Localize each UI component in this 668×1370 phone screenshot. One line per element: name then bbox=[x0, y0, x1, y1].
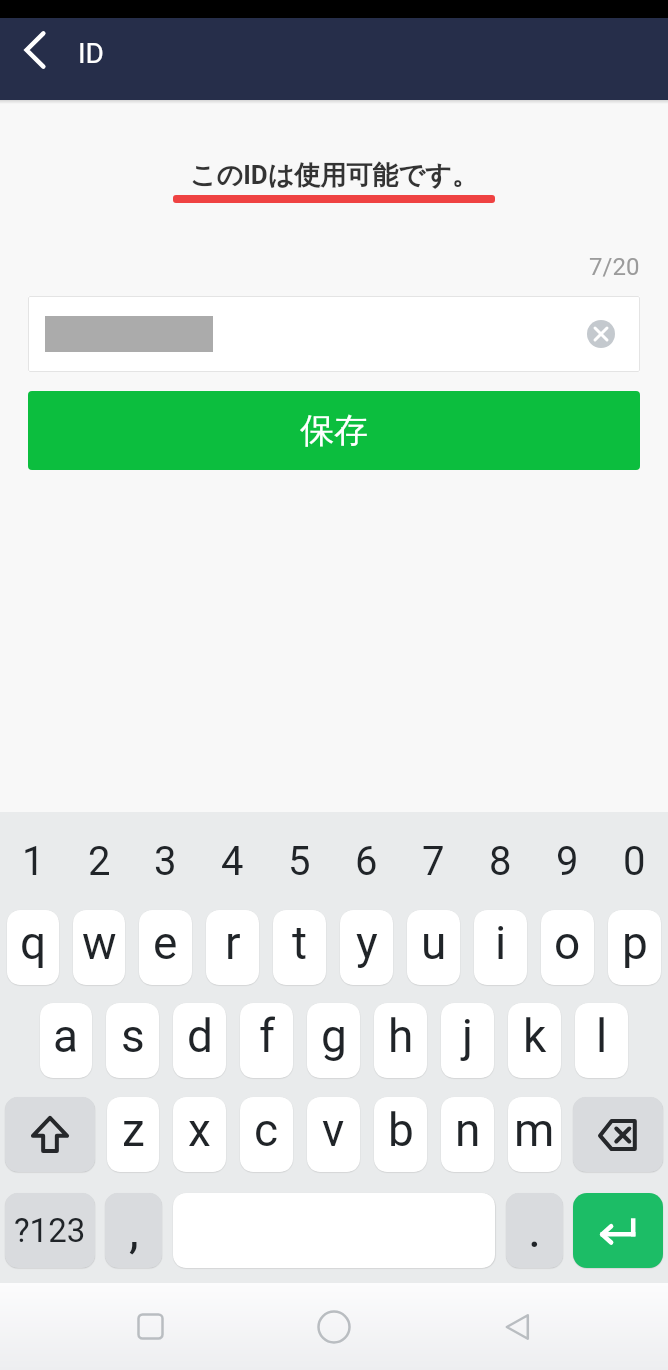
staticText: c bbox=[254, 1103, 279, 1157]
button[interactable]: 9 bbox=[534, 812, 601, 910]
button[interactable]: 0 bbox=[601, 812, 668, 910]
staticText: ID bbox=[78, 37, 104, 70]
staticText: このIDは使用可能です。 bbox=[190, 159, 478, 192]
staticText: j bbox=[462, 1009, 474, 1063]
button[interactable]: k bbox=[508, 1003, 561, 1078]
button[interactable]: 7 bbox=[400, 812, 467, 910]
button[interactable]: q bbox=[7, 910, 59, 985]
staticText: b bbox=[388, 1103, 414, 1157]
button[interactable]: t bbox=[273, 910, 326, 985]
button[interactable]: z bbox=[107, 1097, 159, 1172]
staticText: 5 bbox=[288, 838, 311, 885]
button[interactable]: 5 bbox=[266, 812, 333, 910]
staticText: t bbox=[292, 916, 308, 970]
button[interactable]: f bbox=[240, 1003, 293, 1078]
button[interactable]: l bbox=[575, 1003, 628, 1078]
button[interactable]: ?123 bbox=[5, 1193, 95, 1268]
staticText: 0 bbox=[623, 838, 646, 885]
button[interactable]: d bbox=[173, 1003, 226, 1078]
staticText: w bbox=[82, 916, 117, 970]
staticText: 1 bbox=[22, 838, 45, 885]
staticText: a bbox=[53, 1009, 79, 1063]
button[interactable]: 2 bbox=[66, 812, 132, 910]
button[interactable]: e bbox=[139, 910, 192, 985]
staticText: u bbox=[421, 916, 447, 970]
button[interactable]: a bbox=[40, 1003, 92, 1078]
button[interactable]: b bbox=[374, 1097, 427, 1172]
staticText: s bbox=[121, 1009, 145, 1063]
staticText: , bbox=[129, 1201, 139, 1260]
staticText: 保存 bbox=[300, 409, 368, 452]
staticText: v bbox=[322, 1103, 345, 1157]
button[interactable]: 8 bbox=[467, 812, 534, 910]
button[interactable]: o bbox=[541, 910, 594, 985]
button[interactable] bbox=[5, 1097, 95, 1172]
button[interactable] bbox=[573, 1097, 663, 1172]
button[interactable] bbox=[90, 1283, 210, 1370]
staticText: k bbox=[523, 1009, 547, 1063]
staticText: 7 bbox=[422, 838, 445, 885]
button[interactable]: 3 bbox=[132, 812, 199, 910]
button[interactable]: 保存 bbox=[28, 391, 640, 470]
staticText: l bbox=[596, 1009, 608, 1063]
staticText: y bbox=[356, 916, 378, 970]
button[interactable]: s bbox=[106, 1003, 159, 1078]
staticText: x bbox=[188, 1103, 211, 1157]
staticText: n bbox=[455, 1103, 481, 1157]
staticText: q bbox=[20, 916, 47, 970]
button[interactable]: p bbox=[608, 910, 661, 985]
button[interactable]: 6 bbox=[333, 812, 400, 910]
button[interactable] bbox=[573, 1193, 663, 1268]
staticText: m bbox=[514, 1103, 555, 1157]
staticText: o bbox=[554, 916, 581, 970]
staticText: 3 bbox=[154, 838, 177, 885]
button[interactable]: m bbox=[508, 1097, 561, 1172]
staticText: z bbox=[122, 1103, 145, 1157]
button[interactable]: 4 bbox=[199, 812, 266, 910]
button[interactable]: 1 bbox=[0, 812, 66, 910]
button[interactable]: i bbox=[474, 910, 527, 985]
button[interactable] bbox=[274, 1283, 394, 1370]
button[interactable] bbox=[28, 296, 640, 372]
staticText: i bbox=[495, 916, 507, 970]
staticText: f bbox=[259, 1009, 275, 1063]
button[interactable]: y bbox=[340, 910, 393, 985]
staticText: h bbox=[388, 1009, 414, 1063]
staticText: d bbox=[187, 1009, 213, 1063]
button[interactable]: h bbox=[374, 1003, 427, 1078]
staticText: . bbox=[528, 1201, 542, 1260]
button[interactable]: g bbox=[307, 1003, 360, 1078]
staticText: g bbox=[321, 1009, 347, 1063]
staticText: p bbox=[622, 916, 648, 970]
button[interactable]: u bbox=[407, 910, 460, 985]
button[interactable]: c bbox=[240, 1097, 293, 1172]
staticText: r bbox=[225, 916, 241, 970]
button[interactable]: x bbox=[173, 1097, 226, 1172]
button[interactable]: w bbox=[73, 910, 125, 985]
staticText: 7/20 bbox=[589, 253, 640, 281]
button[interactable] bbox=[458, 1283, 578, 1370]
staticText: 4 bbox=[221, 838, 244, 885]
button[interactable]: . bbox=[506, 1193, 563, 1268]
button[interactable]: j bbox=[441, 1003, 494, 1078]
button[interactable]: r bbox=[206, 910, 259, 985]
staticText: 2 bbox=[88, 838, 111, 885]
staticText: 6 bbox=[355, 838, 378, 885]
staticText: 9 bbox=[556, 838, 579, 885]
button[interactable] bbox=[0, 18, 70, 88]
staticText: e bbox=[153, 916, 178, 970]
staticText: 8 bbox=[489, 838, 512, 885]
staticText: ?123 bbox=[14, 1211, 86, 1250]
button[interactable]: n bbox=[441, 1097, 494, 1172]
button[interactable]: v bbox=[307, 1097, 360, 1172]
button[interactable] bbox=[587, 320, 615, 348]
button[interactable]: , bbox=[105, 1193, 162, 1268]
